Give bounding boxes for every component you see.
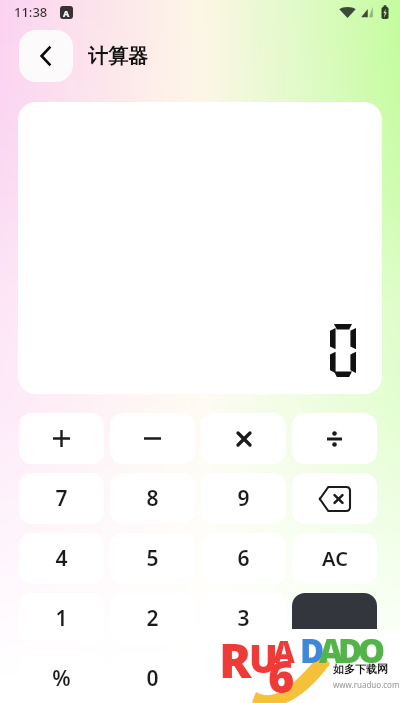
staticText: A	[319, 628, 343, 673]
button[interactable]: Divide	[292, 413, 377, 464]
staticText: 0	[146, 664, 159, 693]
button[interactable]: %	[19, 653, 104, 703]
staticText: 4	[55, 544, 68, 573]
staticText: A	[273, 631, 295, 672]
staticText: D	[300, 628, 325, 673]
staticText: 11:38	[14, 3, 48, 21]
staticText: D	[338, 628, 363, 673]
button[interactable]: 3	[201, 593, 286, 644]
staticText: 7	[55, 484, 68, 513]
button[interactable]: 6	[201, 533, 286, 584]
staticText: .	[241, 664, 247, 693]
staticText: 计算器	[88, 44, 148, 69]
staticText: 2	[146, 604, 159, 633]
staticText: A	[63, 7, 70, 19]
button[interactable]: 0	[110, 653, 195, 703]
button[interactable]: Multiply	[201, 413, 286, 464]
staticText: www.ruaduo.com	[333, 679, 400, 690]
button[interactable]: Minus	[110, 413, 195, 464]
button[interactable]: 4	[19, 533, 104, 584]
button[interactable]: 7	[19, 473, 104, 524]
button[interactable]: 5	[110, 533, 195, 584]
staticText: 3	[237, 604, 250, 633]
button[interactable]: 8	[110, 473, 195, 524]
button[interactable]: Back	[19, 30, 73, 82]
button[interactable]: 1	[19, 593, 104, 644]
staticText: =	[328, 632, 342, 665]
staticText: 9	[237, 484, 250, 513]
button[interactable]: .	[201, 653, 286, 703]
staticText: 6	[268, 645, 295, 703]
staticText: 1	[55, 604, 68, 633]
staticText: 5	[146, 544, 159, 573]
button[interactable]: 9	[201, 473, 286, 524]
button[interactable]: Plus	[19, 413, 104, 464]
button[interactable]: Backspace	[292, 473, 377, 524]
button[interactable]: 2	[110, 593, 195, 644]
staticText: R	[219, 627, 252, 692]
staticText: %	[52, 664, 71, 693]
staticText: AC	[322, 545, 348, 572]
button[interactable]: AC	[292, 533, 377, 584]
staticText: U	[249, 632, 278, 684]
staticText: 8	[146, 484, 159, 513]
staticText: 如多下载网	[333, 662, 388, 676]
staticText: O	[358, 627, 386, 673]
button[interactable]: Equals	[292, 593, 377, 703]
staticText: 6	[237, 544, 250, 573]
